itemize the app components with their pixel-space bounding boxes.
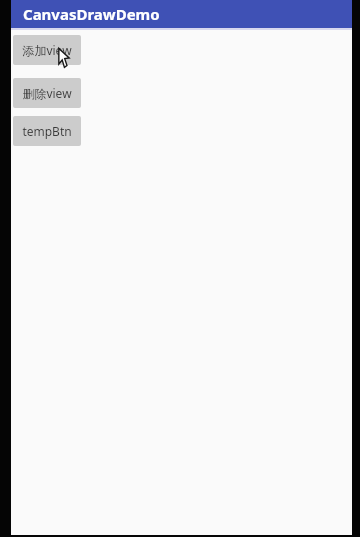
other: Pointer	[58, 48, 72, 68]
button[interactable]: 添加view	[13, 35, 81, 65]
button[interactable]: tempBtn	[13, 116, 81, 146]
button[interactable]: 删除view	[13, 78, 81, 108]
staticText: 删除view	[22, 85, 72, 101]
staticText: 添加view	[22, 42, 72, 58]
staticText: CanvasDrawDemo	[23, 4, 160, 24]
staticText: tempBtn	[22, 123, 72, 139]
